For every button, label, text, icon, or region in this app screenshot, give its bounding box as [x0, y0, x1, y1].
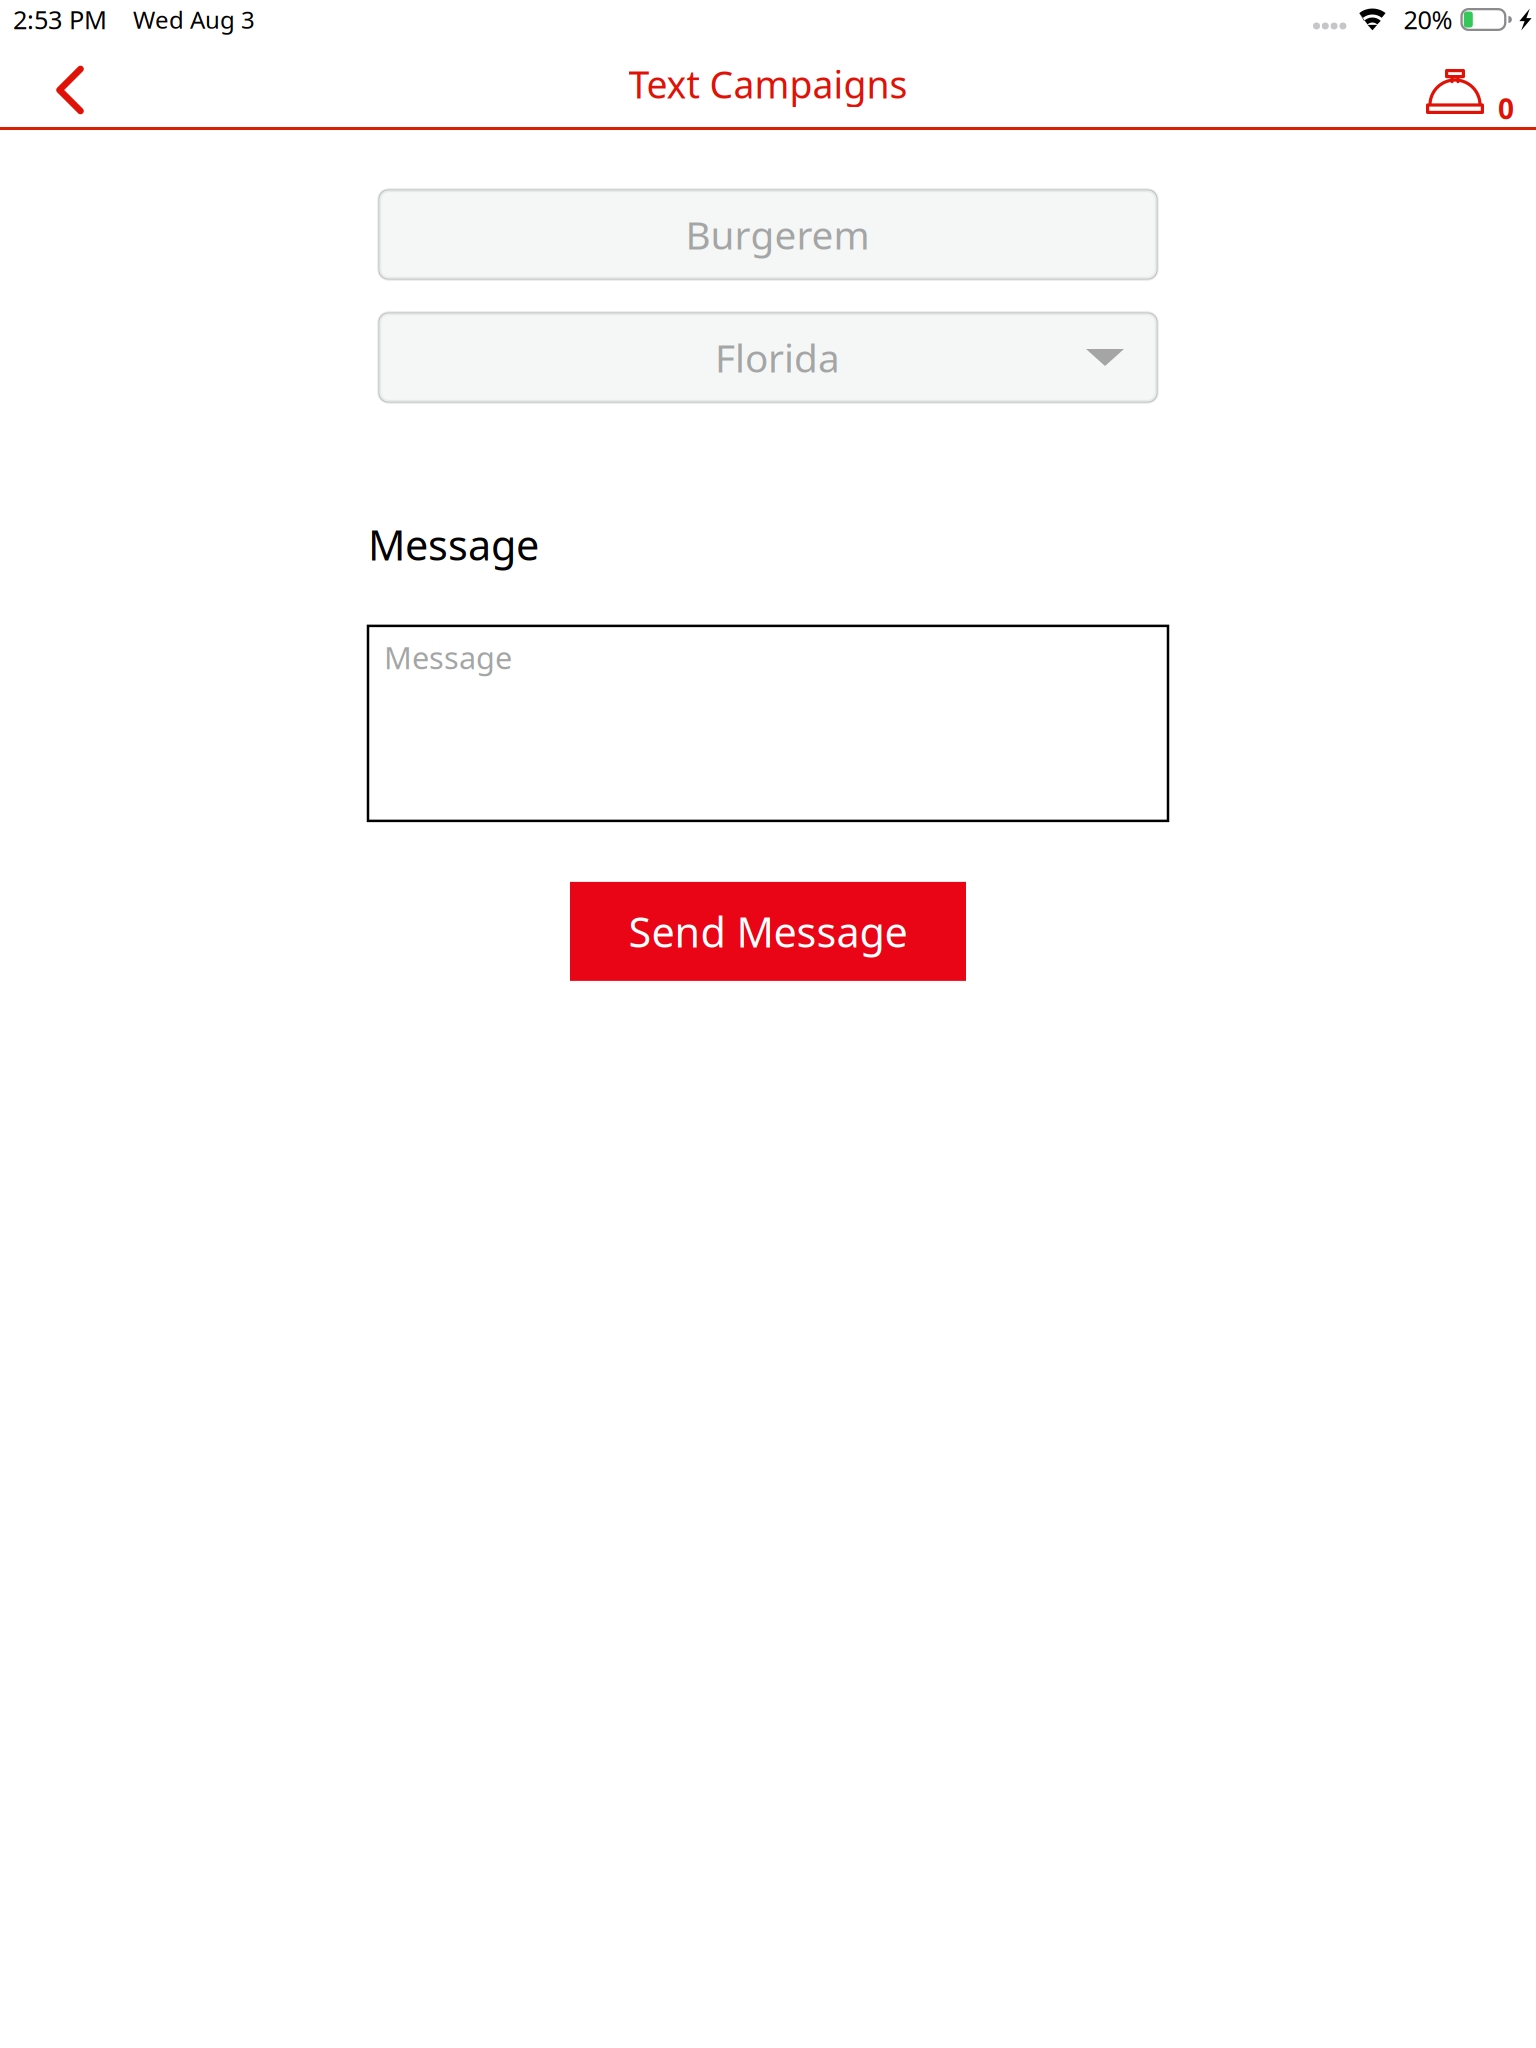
staticText: Text Campaigns: [628, 59, 907, 109]
staticText: Florida: [715, 332, 840, 383]
staticText: 2:53 PM: [13, 3, 107, 36]
button[interactable]: Notifications, 0 new: [1426, 46, 1536, 130]
button[interactable]: Back: [0, 46, 120, 130]
staticText: Wed Aug 3: [133, 4, 255, 35]
staticText: Message: [384, 637, 512, 678]
button[interactable]: Send Message: [570, 882, 966, 981]
staticText: 20%: [1403, 3, 1452, 36]
staticText: 0: [1498, 90, 1514, 127]
button[interactable]: State, Florida: [379, 313, 1157, 402]
staticText: Send Message: [628, 904, 907, 959]
staticText: Message: [368, 517, 539, 572]
staticText: Burgerem: [685, 209, 869, 260]
